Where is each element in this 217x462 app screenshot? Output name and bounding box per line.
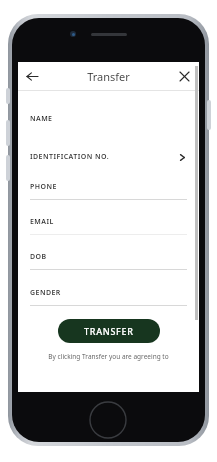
staticText: IDENTIFICATION NO. [30,152,178,162]
button[interactable]: PHONE [18,182,199,200]
button[interactable]: Close [174,66,194,86]
button[interactable]: TRANSFER [58,319,160,343]
staticText: EMAIL [30,217,54,227]
other: Select identification [178,153,187,162]
staticText: GENDER [30,288,61,298]
button[interactable]: NAME [18,114,199,131]
staticText: TRANSFER [84,325,134,337]
button[interactable]: DOB [18,252,199,270]
staticText: NAME [30,114,53,124]
button[interactable]: GENDER [18,288,199,306]
staticText: Transfer [87,69,130,84]
staticText: DOB [30,252,47,262]
staticText: PHONE [30,182,57,192]
button[interactable]: IDENTIFICATION NO. [18,152,199,162]
button[interactable]: Back [22,66,42,86]
button[interactable]: EMAIL [18,217,199,235]
staticText: By clicking Transfer you are agreeing to [48,352,169,361]
